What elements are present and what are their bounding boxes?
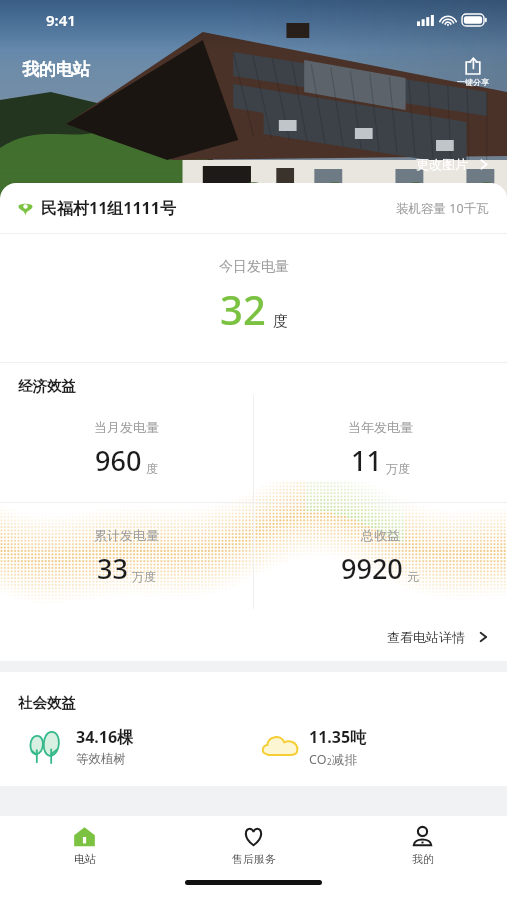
staticText: CO [309, 751, 327, 768]
staticText: 经济效益 [18, 377, 76, 395]
staticText: 当月发电量 [94, 419, 159, 435]
staticText: 960 [95, 442, 142, 479]
staticText: 万度 [386, 461, 410, 476]
staticText: 查看电站详情 [387, 629, 465, 645]
staticText: 社会效益 [18, 694, 76, 712]
staticText: 万度 [132, 569, 156, 584]
staticText: 2 [327, 756, 332, 767]
button[interactable]: 我的 [338, 816, 507, 874]
staticText: 今日发电量 [219, 258, 289, 276]
staticText: 民福村11组1111号 [41, 197, 176, 219]
staticText: 9920 [341, 550, 403, 587]
staticText: 元 [407, 569, 419, 584]
staticText: 34.16棵 [76, 726, 134, 748]
staticText: 11 [351, 442, 382, 479]
staticText: 总收益 [361, 527, 400, 543]
button[interactable]: 售后服务 [169, 816, 338, 874]
button[interactable]: 查看电站详情 [373, 625, 507, 661]
staticText: 售后服务 [232, 852, 276, 866]
staticText: 33 [97, 550, 128, 587]
staticText: 我的电站 [22, 59, 90, 80]
staticText: 32 [220, 282, 266, 336]
button[interactable]: 更改图片 [410, 152, 495, 176]
staticText: 累计发电量 [94, 527, 159, 543]
staticText: 装机容量 10千瓦 [396, 200, 489, 217]
staticText: 电站 [74, 852, 96, 866]
staticText: 我的 [412, 852, 434, 866]
staticText: 度 [146, 461, 158, 476]
staticText: 等效植树 [76, 751, 126, 767]
staticText: 9:41 [46, 10, 76, 30]
button[interactable]: 一键分享 [453, 54, 493, 89]
staticText: 更改图片 [416, 156, 468, 172]
button[interactable]: 电站 [0, 816, 169, 874]
staticText: 11.35吨 [309, 726, 367, 748]
staticText: 当年发电量 [348, 419, 413, 435]
staticText: 度 [273, 312, 288, 331]
staticText: 减排 [332, 752, 357, 768]
staticText: 一键分享 [457, 77, 489, 87]
